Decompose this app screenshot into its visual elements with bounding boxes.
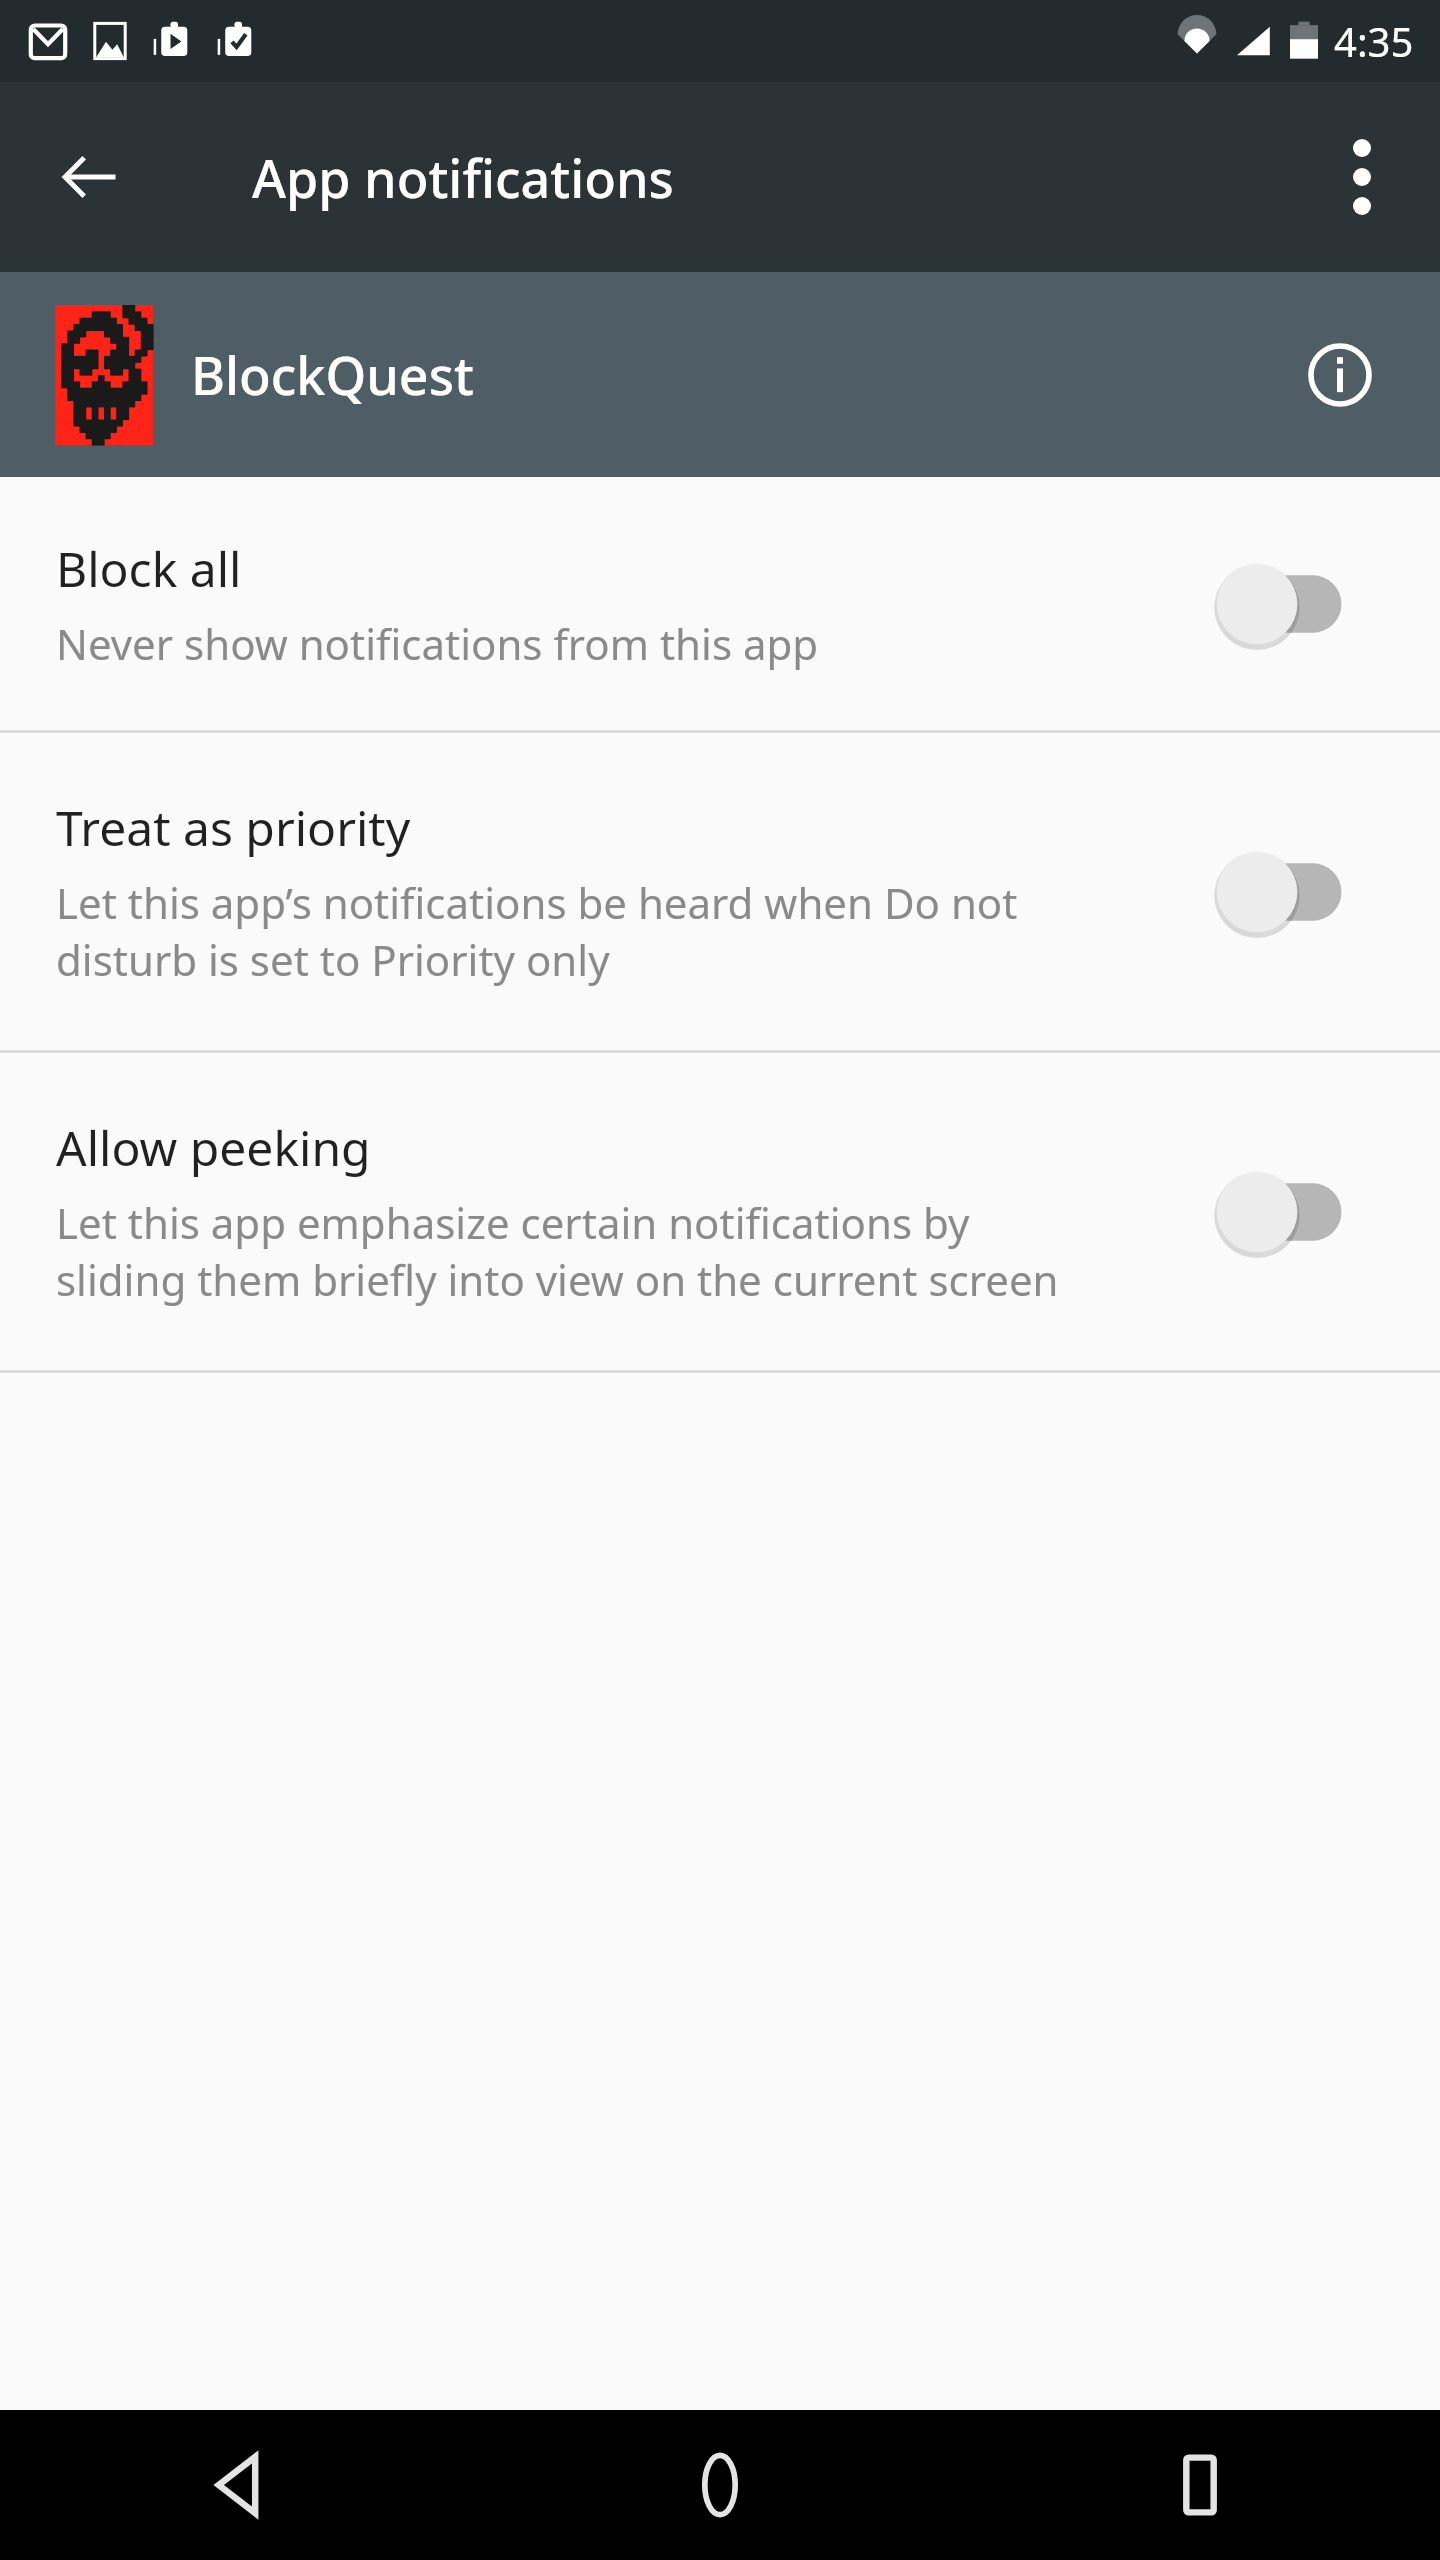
button[interactable]: App info: [1288, 323, 1392, 427]
staticText: Block all: [56, 536, 242, 601]
staticText: Never show notifications from this app: [56, 615, 819, 672]
button[interactable]: Allow peeking: [0, 1053, 1440, 1370]
staticText: BlockQuest: [191, 339, 474, 410]
staticText: App notifications: [252, 142, 674, 213]
button[interactable]: Treat as priority: [0, 733, 1440, 1050]
staticText: Let this app’s notifications be heard wh…: [56, 874, 1018, 988]
staticText: 4:35: [1334, 14, 1414, 68]
button[interactable]: Allow peeking: [1218, 1152, 1368, 1272]
button[interactable]: Back: [0, 2410, 480, 2560]
button[interactable]: Block all: [0, 477, 1440, 730]
button[interactable]: Treat as priority: [1218, 832, 1368, 952]
button[interactable]: More options: [1308, 123, 1416, 231]
button[interactable]: Back: [36, 123, 144, 231]
button[interactable]: BlockQuest: [0, 272, 1440, 477]
button[interactable]: Recents: [960, 2410, 1440, 2560]
staticText: Allow peeking: [56, 1115, 371, 1180]
button[interactable]: Block all: [1218, 544, 1368, 664]
button[interactable]: Home: [480, 2410, 960, 2560]
staticText: Let this app emphasize certain notificat…: [56, 1194, 1059, 1308]
staticText: Treat as priority: [56, 795, 411, 860]
